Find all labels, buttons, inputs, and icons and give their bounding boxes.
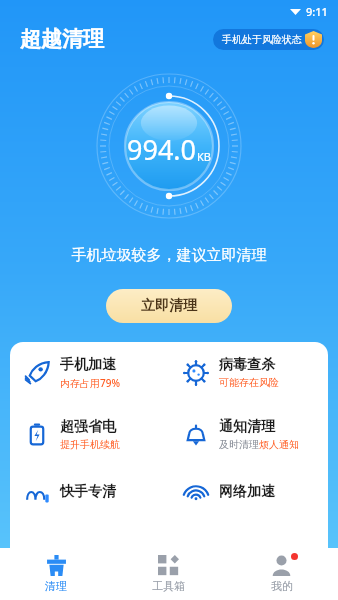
button[interactable]: 通知清理 [169,418,328,451]
staticText: 手机垃圾较多，建议立即清理 [0,246,338,265]
staticText: KB [197,149,211,164]
button[interactable]: 清理 [0,548,112,600]
button[interactable]: 立即清理 [106,289,232,323]
staticText: 9:11 [306,4,328,19]
staticText: 烦人通知 [259,438,299,451]
button[interactable]: 工具箱 [112,548,225,600]
button[interactable]: 我的 [225,548,338,600]
staticText: 工具箱 [152,579,185,593]
staticText: 手机加速 [60,356,116,374]
staticText: 提升手机续航 [60,438,120,451]
staticText: 超强省电 [60,418,116,436]
button[interactable]: 超强省电 [10,418,169,451]
button[interactable]: 手机加速 [10,356,169,390]
staticText: 快手专清 [60,483,116,501]
button[interactable]: 病毒查杀 [169,356,328,389]
staticText: 病毒查杀 [219,356,275,374]
button[interactable]: 手机处于风险状态 [213,29,324,50]
staticText: 及时清理 [219,438,259,451]
staticText: 994.0 [127,131,197,168]
staticText: 超越清理 [20,26,104,52]
staticText: 可能存在风险 [219,376,279,389]
staticText: 立即清理 [141,297,197,315]
button[interactable]: 网络加速 [169,479,328,505]
staticText: 通知清理 [219,418,275,436]
staticText: 网络加速 [219,483,275,501]
staticText: 内存占用79% [60,376,120,390]
button[interactable]: 快手专清 [10,479,169,505]
staticText: 清理 [45,579,67,593]
staticText: 手机处于风险状态 [222,33,302,46]
staticText: 我的 [271,579,293,593]
